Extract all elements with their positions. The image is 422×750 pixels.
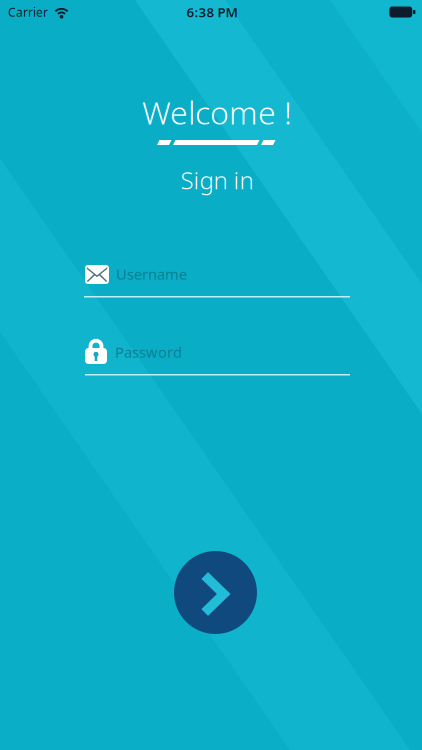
staticText: Username <box>116 264 187 284</box>
button[interactable]: Sign in <box>174 551 257 634</box>
staticText: Password <box>115 342 182 362</box>
staticText: 6:38 PM <box>186 3 237 21</box>
staticText: Carrier <box>8 4 48 20</box>
staticText: Sign in <box>180 164 253 196</box>
staticText: Welcome ! <box>142 91 292 133</box>
